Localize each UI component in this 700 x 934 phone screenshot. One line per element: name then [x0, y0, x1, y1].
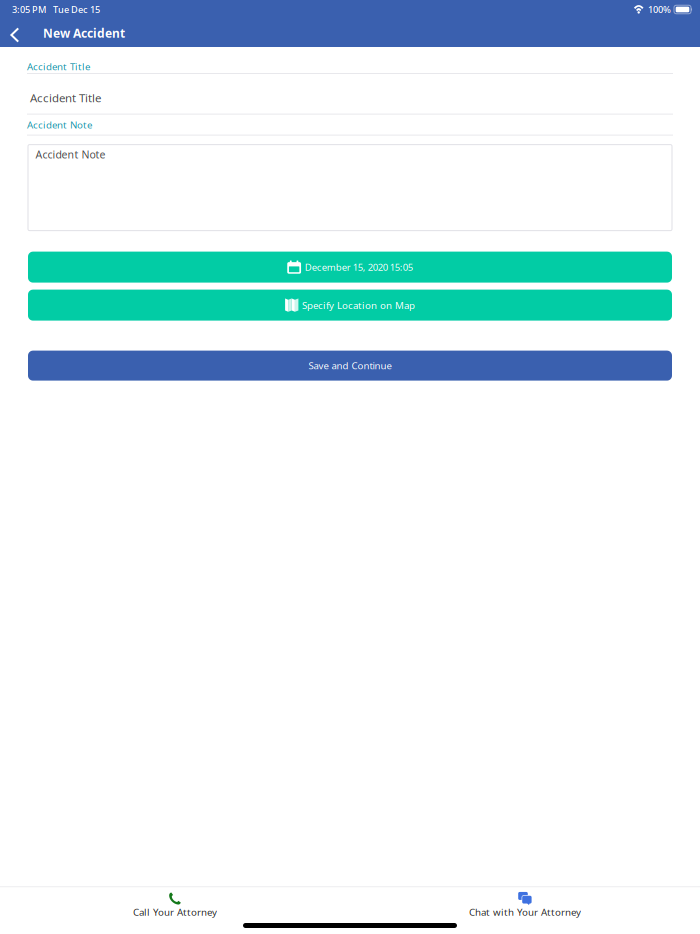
staticText: 3:05 PM — [12, 3, 46, 16]
button[interactable]: Call Your Attorney — [0, 887, 350, 926]
staticText: Accident Note — [35, 147, 105, 161]
button[interactable]: Chat with Your Attorney — [350, 887, 700, 926]
staticText: Save and Continue — [308, 359, 391, 372]
staticText: Call Your Attorney — [133, 905, 217, 919]
button[interactable]: Back — [0, 19, 31, 47]
staticText: Accident Note — [27, 118, 92, 131]
staticText: 100% — [648, 3, 671, 16]
staticText: Chat with Your Attorney — [469, 905, 581, 919]
staticText: Accident Title — [27, 60, 90, 73]
staticText: December 15, 2020 15:05 — [305, 261, 413, 274]
staticText: Tue Dec 15 — [53, 3, 100, 16]
staticText: Accident Title — [30, 90, 101, 106]
button[interactable]: December 15, 2020 15:05 — [28, 252, 672, 283]
staticText: New Accident — [43, 25, 125, 41]
button[interactable]: Save and Continue — [28, 351, 672, 381]
button[interactable]: Specify Location on Map — [28, 290, 672, 321]
staticText: Specify Location on Map — [302, 298, 415, 312]
